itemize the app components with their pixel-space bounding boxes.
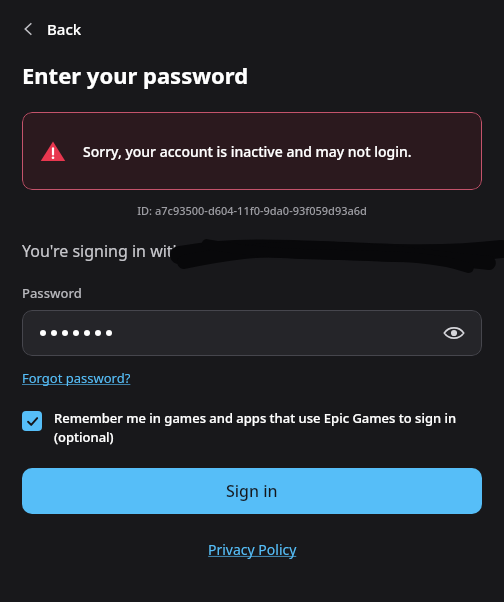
staticText: Forgot password? [22,369,131,387]
staticText: Back [47,19,82,39]
staticText: Privacy Policy [208,540,297,559]
staticText: Sign in [226,480,278,502]
button[interactable]: Show password [22,310,482,356]
button[interactable]: Show password [438,317,470,349]
staticText: Sorry, your account is inactive and may … [83,142,412,161]
button[interactable]: Forgot password? [22,369,131,387]
staticText: ID: a7c93500-d604-11f0-9da0-93f059d93a6d [0,203,504,218]
button[interactable]: Back [14,14,88,44]
button[interactable]: Sign in [22,468,482,514]
staticText: Remember me in games and apps that use E… [54,409,482,446]
button[interactable]: Remember me in games and apps that use E… [22,409,482,446]
staticText: Enter your password [22,60,249,90]
staticText: Password [22,284,82,302]
button[interactable]: Privacy Policy [208,540,297,559]
staticText: You're signing in with [22,240,183,262]
